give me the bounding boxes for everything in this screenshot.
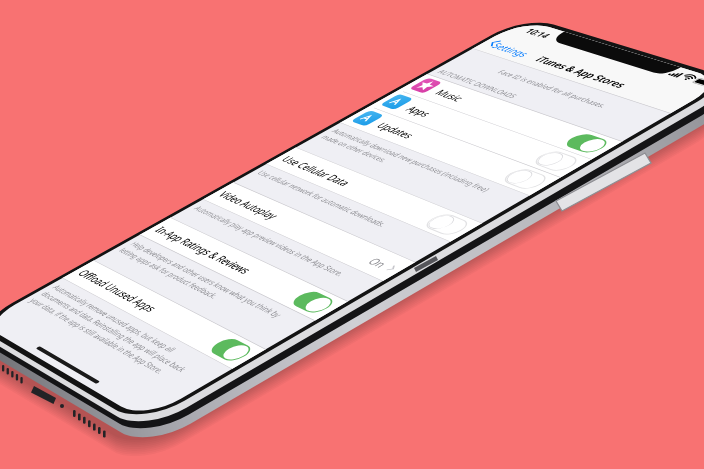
button[interactable]: iPhone showing iTunes and App Stores set…	[0, 0, 704, 469]
